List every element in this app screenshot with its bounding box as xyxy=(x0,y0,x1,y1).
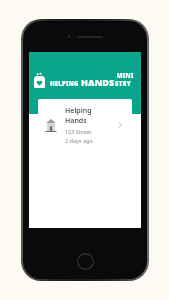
button[interactable]: Helping Hands xyxy=(38,99,132,151)
staticText: HELPING xyxy=(50,80,81,88)
staticText: MINISTRY xyxy=(115,72,137,88)
staticText: 123 Street xyxy=(65,128,92,135)
staticText: 2 days ago xyxy=(65,137,93,144)
other: Open details xyxy=(115,120,125,130)
staticText: Helping Hands xyxy=(65,106,115,126)
other: Home xyxy=(77,253,94,270)
button[interactable]: HELPING xyxy=(29,70,141,90)
staticText: HANDS xyxy=(81,76,115,88)
